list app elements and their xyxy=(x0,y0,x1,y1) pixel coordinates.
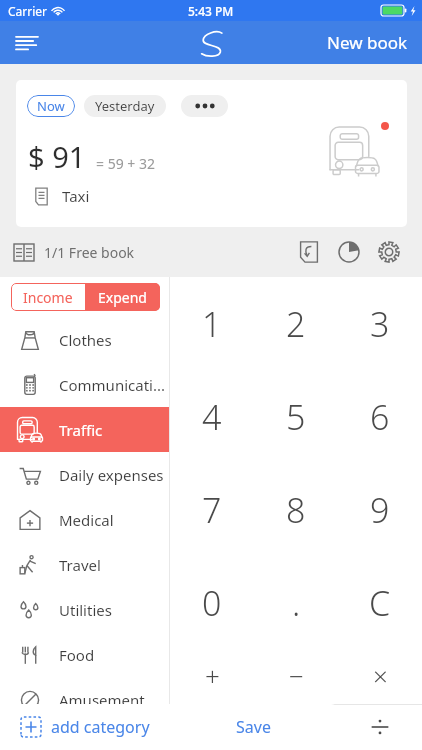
button[interactable]: Income xyxy=(11,283,85,311)
staticText: Traffic xyxy=(59,420,165,440)
staticText: Taxi xyxy=(62,186,90,206)
button[interactable]: 1 xyxy=(170,277,254,370)
button[interactable]: Expend xyxy=(85,283,160,311)
staticText: New book xyxy=(327,31,408,54)
staticText: 1/1 Free book xyxy=(44,243,135,262)
staticText: = 59 + 32 xyxy=(96,154,155,173)
staticText: Daily expenses xyxy=(59,465,165,485)
button[interactable]: . xyxy=(254,556,338,649)
button[interactable]: Traffic xyxy=(0,407,169,452)
staticText: Medical xyxy=(59,510,165,530)
button[interactable]: C xyxy=(338,556,422,649)
button[interactable]: 8 xyxy=(254,463,338,556)
staticText: Yesterday xyxy=(95,97,155,115)
staticText: × xyxy=(373,658,388,693)
staticText: 9 xyxy=(370,487,390,533)
button[interactable]: 0 xyxy=(170,556,254,649)
staticText: 5:43 PM xyxy=(188,3,234,19)
staticText: Expend xyxy=(98,288,147,307)
button[interactable]: Undo xyxy=(292,235,326,269)
staticText: Travel xyxy=(59,555,165,575)
button[interactable]: 6 xyxy=(338,370,422,463)
button[interactable]: 5 xyxy=(254,370,338,463)
button[interactable]: − xyxy=(254,649,338,702)
button[interactable]: 9 xyxy=(338,463,422,556)
button[interactable]: Divide xyxy=(338,704,422,750)
button[interactable]: Clothes xyxy=(0,317,169,362)
button[interactable]: Food xyxy=(0,632,169,677)
staticText: 8 xyxy=(286,487,306,533)
button[interactable]: × xyxy=(338,649,422,702)
button[interactable]: Amusement xyxy=(0,677,169,722)
button[interactable]: New book xyxy=(313,23,422,62)
button[interactable]: Now xyxy=(27,95,75,117)
button[interactable]: 7 xyxy=(170,463,254,556)
button[interactable]: More options xyxy=(181,95,228,117)
button[interactable]: 2 xyxy=(254,277,338,370)
staticText: 0 xyxy=(202,580,222,626)
staticText: Communicati... xyxy=(59,375,165,395)
staticText: 4 xyxy=(202,394,222,440)
button[interactable]: Communicati... xyxy=(0,362,169,407)
staticText: Now xyxy=(37,97,65,115)
button[interactable]: Save xyxy=(169,704,338,750)
staticText: Utilities xyxy=(59,600,165,620)
staticText: Amusement xyxy=(59,690,165,710)
staticText: 2 xyxy=(286,301,306,347)
button[interactable]: 3 xyxy=(338,277,422,370)
staticText: Income xyxy=(23,288,73,307)
staticText: Save xyxy=(236,716,271,738)
button[interactable]: Utilities xyxy=(0,587,169,632)
button[interactable]: Statistics xyxy=(332,235,366,269)
staticText: + xyxy=(205,658,220,693)
staticText: C xyxy=(369,580,391,626)
staticText: . xyxy=(292,580,301,626)
staticText: add category xyxy=(51,716,150,738)
button[interactable]: Medical xyxy=(0,497,169,542)
button[interactable]: Daily expenses xyxy=(0,452,169,497)
staticText: 1 xyxy=(202,301,222,347)
button[interactable]: 1/1 Free book xyxy=(14,243,135,262)
button[interactable]: Yesterday xyxy=(84,95,166,117)
button[interactable]: + xyxy=(170,649,254,702)
button[interactable]: 4 xyxy=(170,370,254,463)
staticText: Food xyxy=(59,645,165,665)
button[interactable]: Menu xyxy=(6,22,48,64)
button[interactable]: add category xyxy=(0,704,169,750)
staticText: − xyxy=(289,658,304,693)
staticText: 6 xyxy=(370,394,390,440)
staticText: Clothes xyxy=(59,330,165,350)
staticText: 3 xyxy=(370,301,390,347)
staticText: 5 xyxy=(286,394,306,440)
button[interactable]: Settings xyxy=(372,235,406,269)
staticText: $ 91 xyxy=(28,137,86,176)
button[interactable]: Travel xyxy=(0,542,169,587)
staticText: 7 xyxy=(202,487,222,533)
staticText: Carrier xyxy=(8,3,48,19)
